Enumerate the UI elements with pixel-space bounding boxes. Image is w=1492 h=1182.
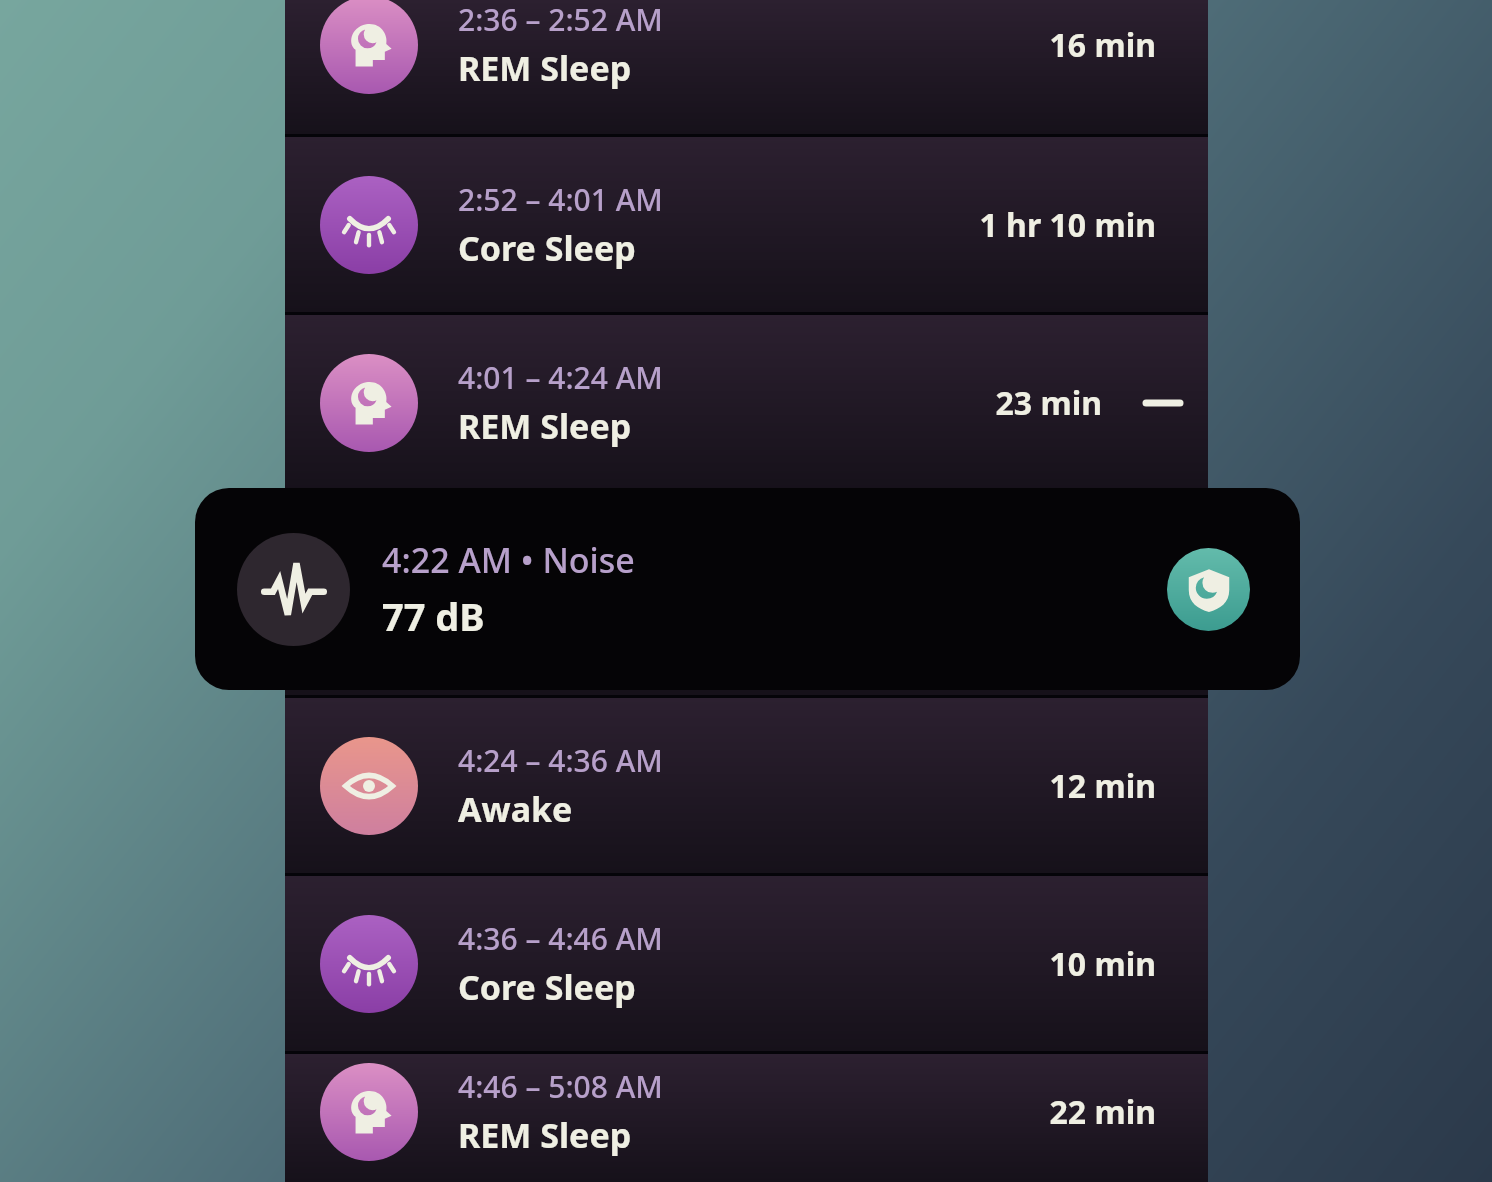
button[interactable]: 4:22 AM • Noise (195, 488, 1300, 690)
button[interactable]: 2:36 – 2:52 AM (285, 0, 1208, 134)
button[interactable]: Sleep guard (1167, 548, 1250, 631)
staticText: REM Sleep (458, 403, 632, 449)
button[interactable]: 4:01 – 4:24 AM (285, 315, 1208, 491)
button[interactable]: 4:46 – 5:08 AM (285, 1054, 1208, 1182)
staticText: REM Sleep (458, 45, 632, 91)
button[interactable]: 2:52 – 4:01 AM (285, 137, 1208, 312)
staticText: 23 min (995, 381, 1102, 425)
staticText: 2:52 – 4:01 AM (458, 179, 663, 220)
staticText: 4:01 – 4:24 AM (458, 357, 663, 398)
staticText: Core Sleep (458, 964, 636, 1010)
staticText: 4:46 – 5:08 AM (458, 1066, 663, 1107)
button[interactable] (285, 494, 1208, 695)
staticText: 4:36 – 4:46 AM (458, 918, 663, 959)
staticText: 2:36 – 2:52 AM (458, 0, 663, 40)
button[interactable]: 4:24 – 4:36 AM (285, 698, 1208, 873)
staticText: 77 dB (382, 590, 485, 642)
staticText: 22 min (1049, 1090, 1156, 1134)
staticText: 12 min (1049, 764, 1156, 808)
button[interactable]: 4:36 – 4:46 AM (285, 876, 1208, 1051)
staticText: REM Sleep (458, 1112, 632, 1158)
staticText: Awake (458, 786, 573, 832)
staticText: Core Sleep (458, 225, 636, 271)
staticText: 4:24 – 4:36 AM (458, 740, 663, 781)
staticText: 1 hr 10 min (979, 203, 1156, 247)
staticText: 4:22 AM • Noise (382, 537, 635, 583)
staticText: 16 min (1049, 23, 1156, 67)
staticText: 10 min (1049, 942, 1156, 986)
